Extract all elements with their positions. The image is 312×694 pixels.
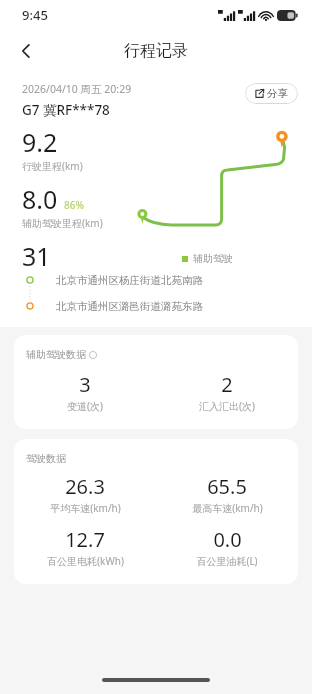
- staticText: 26.3: [65, 473, 105, 500]
- staticText: 9.2: [22, 125, 58, 159]
- staticText: 86%: [64, 198, 84, 212]
- staticText: 驾驶数据: [26, 452, 66, 465]
- button[interactable]: 分享: [245, 83, 298, 104]
- staticText: 汇入汇出(次): [199, 399, 255, 413]
- staticText: 65.5: [207, 473, 247, 500]
- staticText: 平均车速(km/h): [50, 501, 121, 515]
- staticText: 2026/04/10 周五 20:29: [22, 82, 132, 96]
- staticText: 最高车速(km/h): [192, 501, 263, 515]
- staticText: 北京市通州区潞邑街道潞苑东路: [56, 300, 203, 313]
- staticText: 分享: [267, 87, 288, 100]
- staticText: 8.0: [22, 182, 58, 216]
- staticText: 行程记录: [124, 41, 188, 61]
- staticText: 12.7: [65, 526, 105, 553]
- staticText: 辅助驾驶数据: [26, 348, 86, 361]
- staticText: 百公里电耗(kWh): [47, 554, 124, 568]
- staticText: 辅助驾驶里程(km): [22, 216, 103, 230]
- staticText: G7 冀RF***78: [22, 101, 110, 119]
- staticText: 9:45: [22, 6, 48, 24]
- staticText: 百公里油耗(L): [196, 554, 258, 568]
- staticText: 0.0: [213, 526, 242, 553]
- staticText: 31: [22, 239, 51, 271]
- staticText: 2: [221, 371, 233, 398]
- staticText: 3: [79, 371, 91, 398]
- button[interactable]: 驾驶数据: [14, 439, 298, 584]
- button[interactable]: Back: [6, 31, 46, 71]
- staticText: 变道(次): [67, 399, 103, 413]
- button[interactable]: 辅助驾驶数据: [14, 335, 298, 429]
- staticText: 行驶里程(km): [22, 159, 83, 173]
- staticText: 辅助驾驶: [193, 252, 233, 265]
- staticText: 北京市通州区杨庄街道北苑南路: [56, 274, 203, 287]
